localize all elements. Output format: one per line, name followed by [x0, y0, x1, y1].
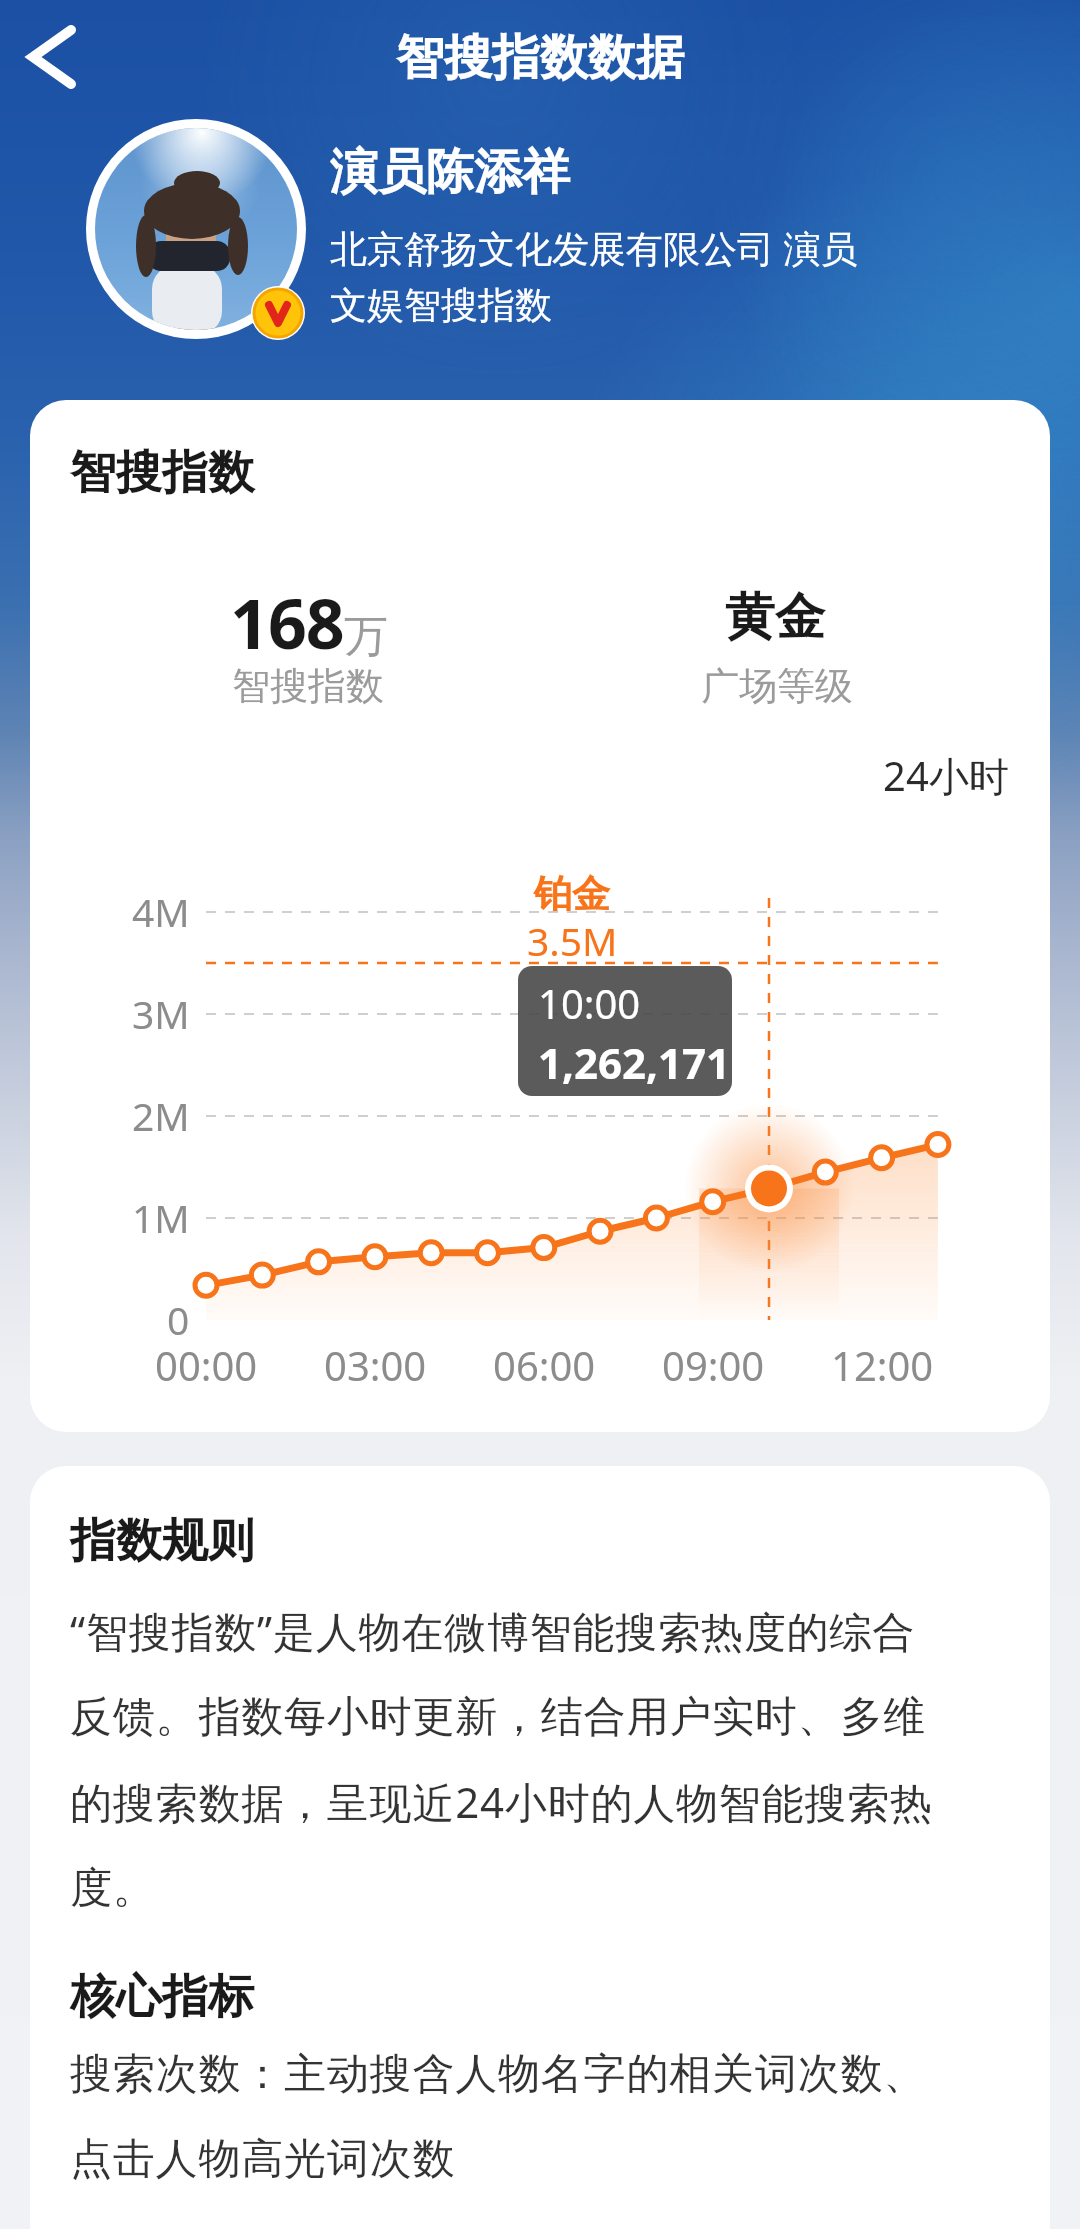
staticText: 核心指标	[70, 1968, 254, 2026]
staticText: 智搜指数	[70, 444, 254, 502]
staticText: 00:00	[155, 1338, 258, 1392]
button[interactable]	[18, 22, 88, 92]
staticText: 北京舒扬文化发展有限公司 演员	[330, 222, 858, 273]
staticText: 演员陈添祥	[330, 142, 570, 202]
staticText: 0	[167, 1293, 190, 1346]
staticText: 168	[230, 576, 344, 669]
staticText: 03:00	[324, 1338, 427, 1392]
staticText: 铂金	[534, 870, 610, 918]
staticText: 智搜指数数据	[396, 28, 684, 88]
staticText: 广场等级	[701, 662, 853, 710]
staticText: 12:00	[831, 1338, 934, 1392]
button[interactable]: 24小时	[709, 748, 1009, 803]
staticText: 指数规则	[70, 1512, 254, 1570]
button[interactable]	[86, 119, 306, 339]
staticText: 1,262,171	[538, 1034, 731, 1091]
staticText: 黄金	[725, 586, 825, 649]
staticText: 文娱智搜指数	[330, 282, 552, 329]
staticText: 1M	[132, 1191, 190, 1244]
staticText: 06:00	[493, 1338, 596, 1392]
staticText: 万	[344, 609, 388, 664]
staticText: 搜索次数：主动搜含人物名字的相关词次数、 点击人物高光词次数	[70, 2048, 926, 2185]
staticText: 3M	[132, 987, 190, 1040]
staticText: 10:00	[538, 976, 641, 1030]
staticText: 2M	[132, 1089, 190, 1142]
staticText: 4M	[132, 885, 190, 938]
staticText: “智搜指数”是人物在微博智能搜索热度的综合 反馈。指数每小时更新，结合用户实时、…	[70, 1602, 933, 1914]
staticText: 智搜指数	[232, 662, 384, 710]
staticText: 3.5M	[527, 914, 618, 967]
staticText: 24小时	[883, 748, 1009, 803]
staticText: 09:00	[662, 1338, 765, 1392]
